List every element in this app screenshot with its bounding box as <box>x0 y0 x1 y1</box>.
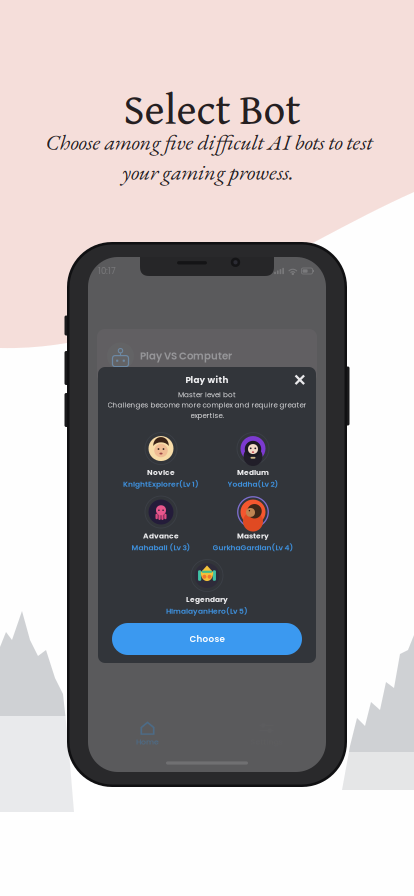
staticText: Select Bot <box>123 77 300 139</box>
button[interactable]: Close <box>289 369 311 391</box>
staticText: Home <box>136 736 159 747</box>
staticText: Novice <box>147 467 175 477</box>
button[interactable]: Choose <box>112 623 302 655</box>
button[interactable]: Home <box>88 716 207 752</box>
staticText: Advance <box>143 530 179 541</box>
staticText: Medium <box>237 467 269 477</box>
staticText: your gaming prowess. <box>122 158 294 186</box>
staticText: HimalayanHero(Lv 5) <box>166 606 248 616</box>
button[interactable]: Novice <box>115 432 207 489</box>
staticText: Play with <box>185 374 228 386</box>
staticText: Challenges become more complex and requi… <box>107 400 306 410</box>
staticText: expertise. <box>190 410 223 420</box>
staticText: Master level bot <box>178 390 236 400</box>
staticText: Yoddha(Lv 2) <box>227 479 278 489</box>
button[interactable]: Advance <box>115 496 207 553</box>
staticText: Choose <box>189 633 224 645</box>
staticText: Mastery <box>237 530 269 541</box>
staticText: GurkhaGardian(Lv 4) <box>212 542 293 553</box>
staticText: 10:17 <box>98 265 116 277</box>
button[interactable]: Mastery <box>207 496 299 553</box>
staticText: KnightExplorer(Lv 1) <box>123 479 199 489</box>
staticText: Legendary <box>186 594 228 604</box>
staticText: Choose among five difficult AI bots to t… <box>45 128 372 156</box>
staticText: Mahabali (Lv 3) <box>131 542 190 553</box>
button[interactable]: Medium <box>207 432 299 489</box>
button[interactable]: Legendary <box>161 559 253 616</box>
staticText: Play VS Computer <box>140 349 232 363</box>
